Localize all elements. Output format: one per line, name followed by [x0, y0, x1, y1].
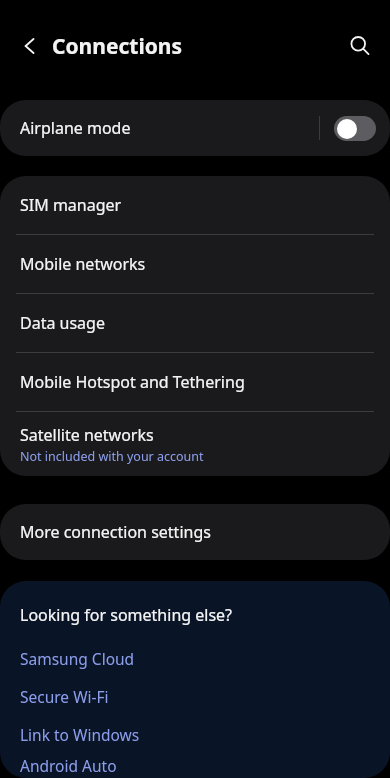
staticText: SIM manager: [20, 194, 122, 216]
staticText: Mobile Hotspot and Tethering: [20, 371, 245, 393]
staticText: Connections: [52, 32, 182, 61]
staticText: Airplane mode: [20, 117, 319, 139]
button[interactable]: Samsung Cloud: [0, 639, 390, 677]
button[interactable]: Airplane mode: [0, 100, 390, 156]
button[interactable]: Mobile networks: [0, 235, 390, 293]
button[interactable]: Android Auto: [0, 753, 390, 778]
staticText: Samsung Cloud: [20, 648, 135, 669]
button[interactable]: SIM manager: [0, 176, 390, 234]
staticText: Link to Windows: [20, 724, 140, 745]
button[interactable]: Mobile Hotspot and Tethering: [0, 353, 390, 411]
button[interactable]: Navigate up: [8, 24, 52, 68]
button[interactable]: Airplane mode, off: [334, 116, 376, 141]
button[interactable]: Search: [338, 24, 382, 68]
staticText: Secure Wi-Fi: [20, 686, 109, 707]
staticText: Mobile networks: [20, 253, 146, 275]
staticText: Data usage: [20, 312, 105, 334]
staticText: Not included with your account: [20, 448, 204, 465]
button[interactable]: Secure Wi-Fi: [0, 677, 390, 715]
button[interactable]: More connection settings: [0, 504, 390, 560]
button[interactable]: Satellite networks: [0, 412, 390, 476]
staticText: Satellite networks: [20, 424, 154, 446]
staticText: Android Auto: [20, 755, 117, 776]
button[interactable]: Link to Windows: [0, 715, 390, 753]
staticText: Looking for something else?: [20, 604, 233, 626]
button[interactable]: Data usage: [0, 294, 390, 352]
staticText: More connection settings: [20, 521, 211, 543]
